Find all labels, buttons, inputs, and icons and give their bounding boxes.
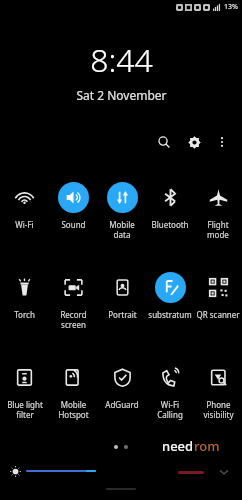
button[interactable]: Wi-Fi	[0, 172, 49, 262]
staticText: Torch	[14, 309, 35, 320]
staticText: Wi-Fi Calling	[157, 399, 183, 420]
staticText: QR scanner	[196, 309, 240, 320]
staticText: Bluetooth	[151, 219, 189, 230]
button[interactable]: Expand	[216, 464, 232, 480]
staticText: Mobile data	[109, 219, 135, 240]
button[interactable]: QR scanner	[194, 262, 242, 352]
button[interactable]: Sound	[49, 172, 98, 262]
button[interactable]: Search	[152, 130, 176, 154]
button[interactable]: Wi-Fi Calling	[146, 352, 194, 442]
staticText: substratum	[148, 309, 192, 320]
button[interactable]: Settings	[182, 130, 206, 154]
button[interactable]: Record screen	[49, 262, 98, 352]
staticText: Sound	[61, 219, 86, 230]
staticText: Record screen	[60, 309, 87, 330]
staticText: Portrait	[108, 309, 137, 320]
button[interactable]: Blue light filter	[0, 352, 49, 442]
button[interactable]: Torch	[0, 262, 49, 352]
staticText: Mobile Hotspot	[58, 399, 89, 420]
button[interactable]: Portrait	[98, 262, 146, 352]
button[interactable]: More options	[210, 130, 234, 154]
button[interactable]: Mobile data	[98, 172, 146, 262]
staticText: Phone visibility	[203, 399, 234, 420]
staticText: rom	[194, 437, 220, 455]
staticText: 13%	[224, 2, 238, 12]
button[interactable]: Bluetooth	[146, 172, 194, 262]
staticText: Flight mode	[207, 219, 229, 240]
staticText: Wi-Fi	[15, 219, 34, 230]
button[interactable]: Flight mode	[194, 172, 242, 262]
staticText: Sat 2 November	[76, 87, 167, 103]
staticText: AdGuard	[105, 399, 139, 410]
staticText: 8:44	[90, 38, 153, 82]
button[interactable]: Brightness	[10, 462, 96, 480]
button[interactable]: AdGuard	[98, 352, 146, 442]
button[interactable]: Mobile Hotspot	[49, 352, 98, 442]
button[interactable]: Phone visibility	[194, 352, 242, 442]
staticText: need	[162, 437, 194, 455]
button[interactable]: substratum	[146, 262, 194, 352]
staticText: Blue light filter	[7, 399, 43, 420]
